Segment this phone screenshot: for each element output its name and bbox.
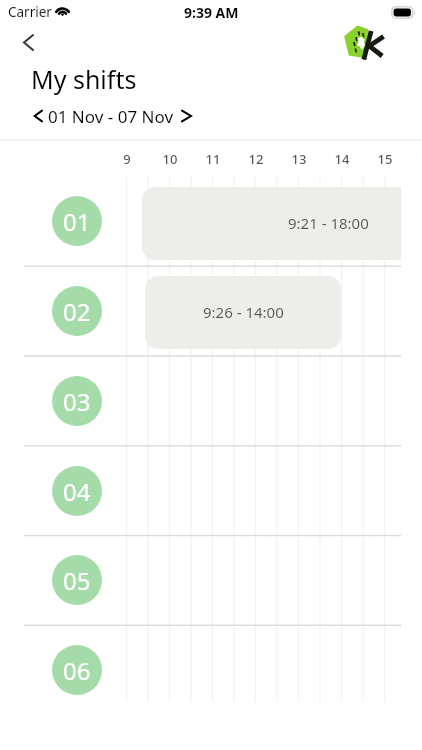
button[interactable]: 04 xyxy=(52,466,102,516)
staticText: 9:21 - 18:00 xyxy=(288,213,369,233)
staticText: 06 xyxy=(63,654,91,687)
button[interactable]: 9:26 - 14:00 xyxy=(145,276,341,349)
button[interactable]: 05 xyxy=(52,555,102,605)
staticText: 01 Nov - 07 Nov xyxy=(48,105,174,128)
button[interactable]: 02 xyxy=(52,286,102,336)
staticText: 03 xyxy=(63,385,91,418)
staticText: 01 xyxy=(63,205,91,238)
staticText: 14 xyxy=(320,150,364,168)
staticText: 05 xyxy=(63,564,91,597)
staticText: 02 xyxy=(63,295,91,328)
staticText: My shifts xyxy=(31,62,137,96)
button[interactable]: Back xyxy=(8,22,48,62)
staticText: 13 xyxy=(277,150,321,168)
staticText: 9:39 AM xyxy=(184,3,239,22)
staticText: 12 xyxy=(234,150,278,168)
staticText: 9:26 - 14:00 xyxy=(203,302,284,322)
button[interactable]: 01 xyxy=(52,196,102,246)
button[interactable]: 06 xyxy=(52,645,102,695)
button[interactable]: 01 Nov - 07 Nov xyxy=(29,104,191,128)
staticText: Carrier xyxy=(8,3,52,21)
staticText: 9 xyxy=(105,150,149,168)
button[interactable]: 9:21 - 18:00 xyxy=(142,187,401,260)
button[interactable]: Kiwi logo xyxy=(342,22,386,64)
button[interactable]: 03 xyxy=(52,376,102,426)
staticText: 04 xyxy=(63,475,91,508)
staticText: 15 xyxy=(363,150,407,168)
staticText: 11 xyxy=(191,150,235,168)
staticText: 10 xyxy=(148,150,192,168)
